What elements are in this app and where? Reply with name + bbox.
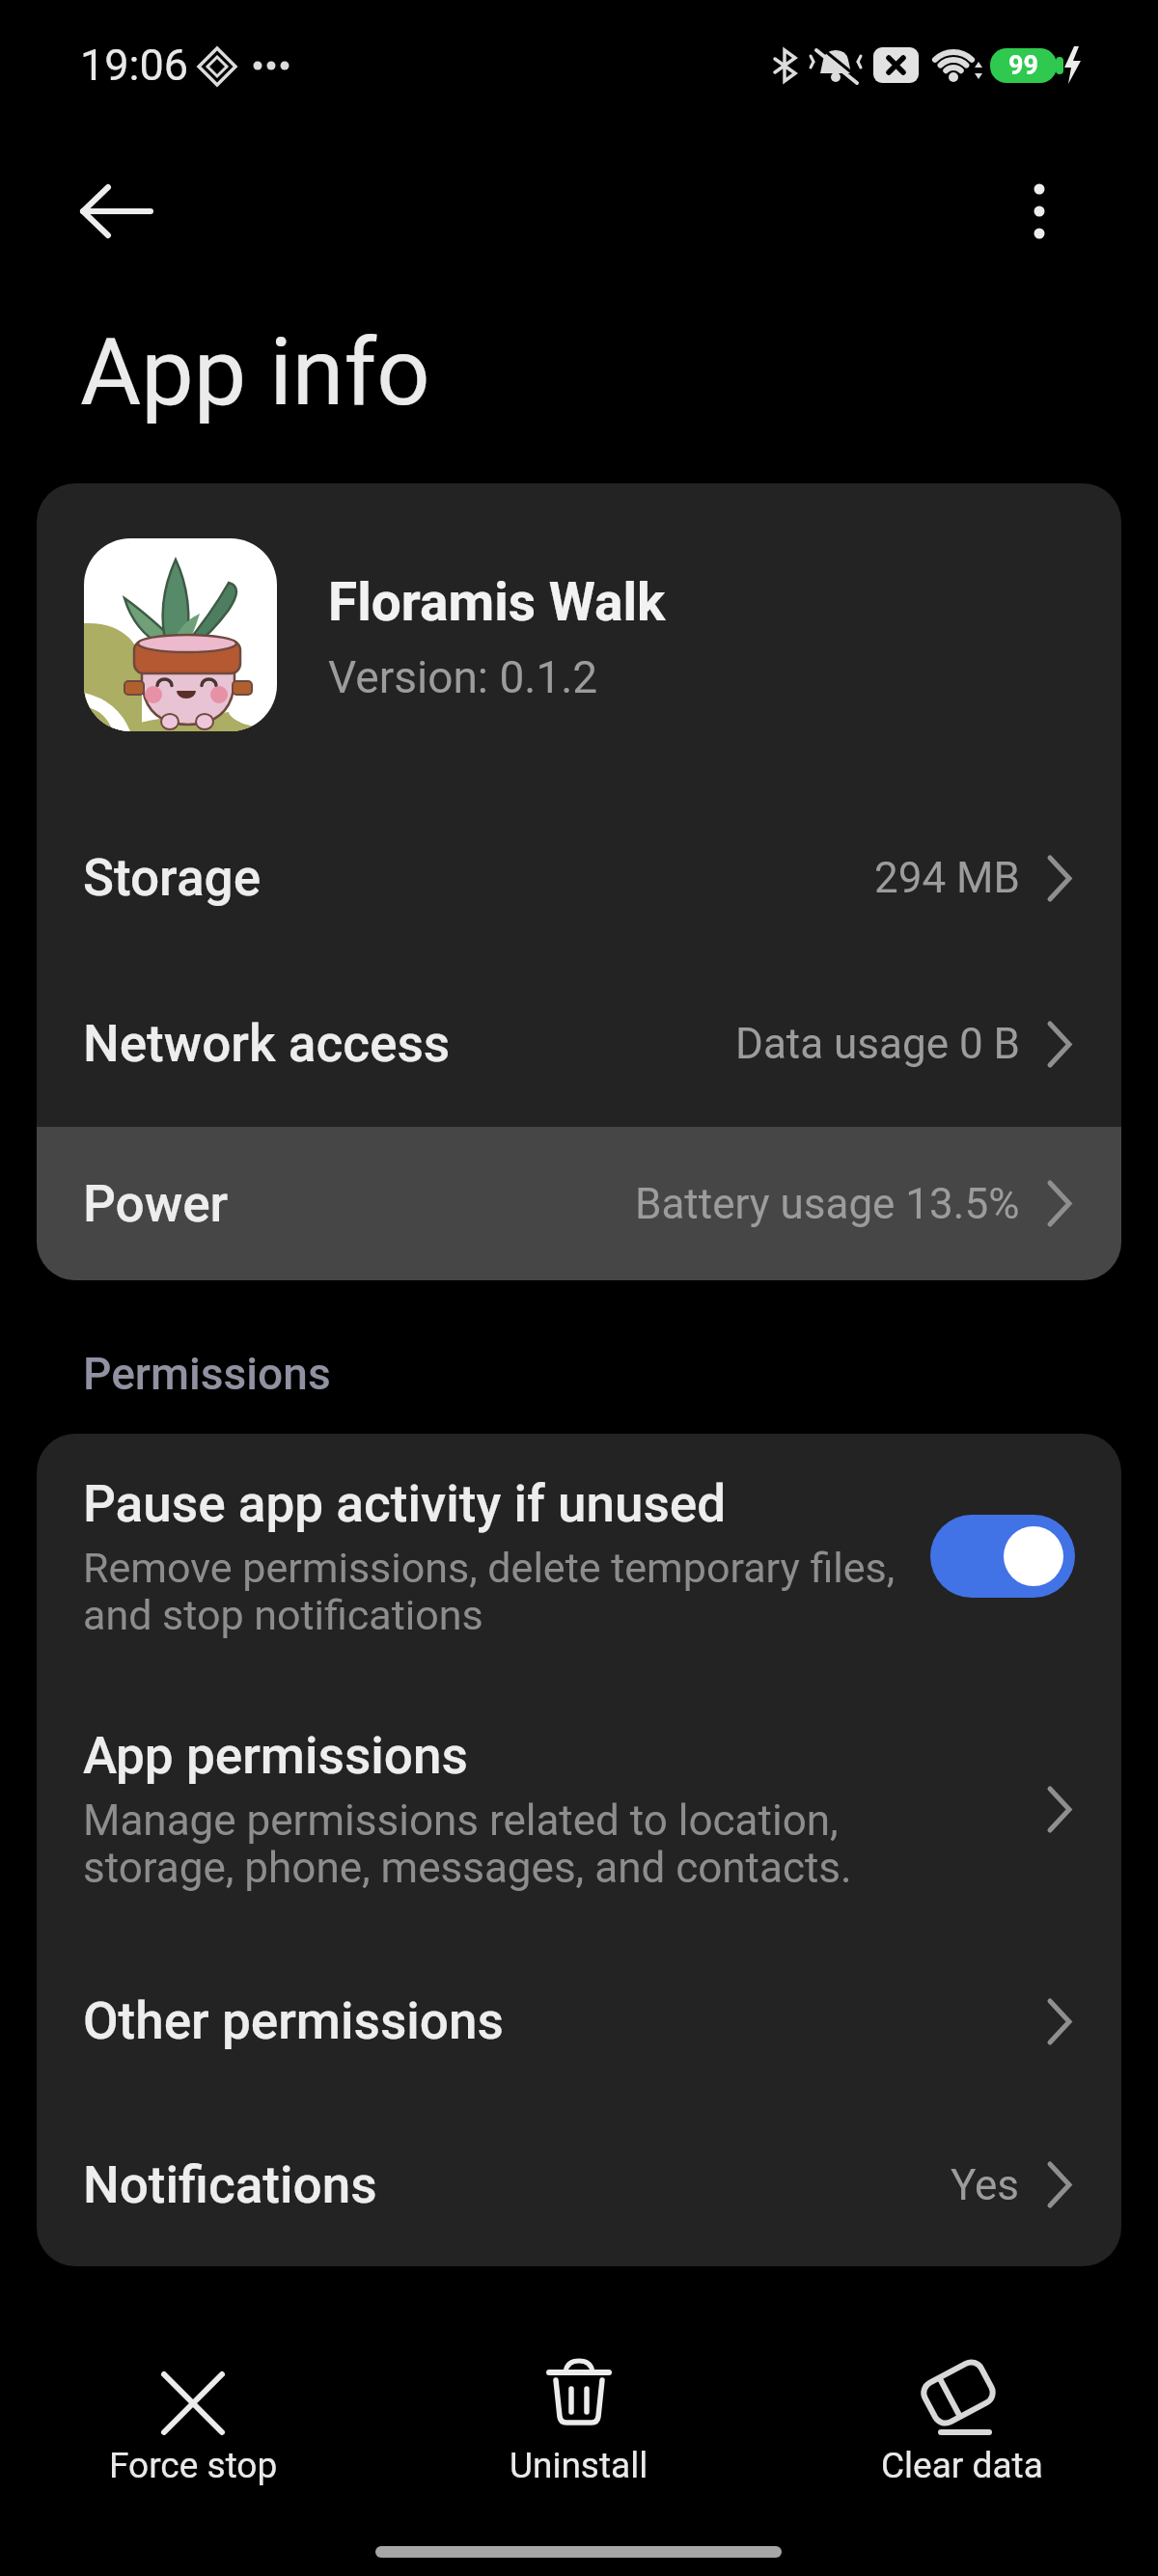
button[interactable]: Other permissions xyxy=(37,1939,1121,2103)
staticText: Data usage 0 B xyxy=(735,1019,1020,1069)
staticText: Force stop xyxy=(109,2445,278,2486)
button[interactable]: Uninstall xyxy=(463,2359,695,2486)
button[interactable]: Clear data xyxy=(846,2359,1078,2486)
staticText: Version: 0.1.2 xyxy=(328,651,598,703)
button[interactable]: Storage xyxy=(37,795,1121,961)
staticText: Notifications xyxy=(83,2155,377,2215)
button[interactable]: Power xyxy=(37,1127,1121,1280)
button[interactable]: App permissions xyxy=(37,1679,1121,1939)
staticText: Remove permissions, delete temporary fil… xyxy=(83,1544,896,1639)
staticText: Clear data xyxy=(881,2445,1043,2486)
staticText: App info xyxy=(80,317,430,427)
staticText: Yes xyxy=(951,2160,1020,2210)
staticText: Floramis Walk xyxy=(328,571,666,633)
button[interactable]: Pause app activity if unused xyxy=(37,1434,1121,1679)
staticText: Other permissions xyxy=(83,1991,504,2051)
staticText: Permissions xyxy=(83,1348,331,1400)
staticText: Network access xyxy=(83,1014,451,1074)
button[interactable] xyxy=(64,169,170,256)
staticText: Storage xyxy=(83,848,262,908)
staticText: 294 MB xyxy=(874,853,1020,903)
button[interactable] xyxy=(1010,170,1068,257)
staticText: Power xyxy=(83,1174,229,1234)
button[interactable]: Network access xyxy=(37,961,1121,1127)
button[interactable]: Force stop xyxy=(77,2359,309,2486)
staticText: Manage permissions related to location, … xyxy=(83,1795,852,1893)
staticText: 99 xyxy=(1008,50,1038,81)
button[interactable]: Notifications xyxy=(37,2103,1121,2266)
button[interactable] xyxy=(930,1515,1075,1598)
staticText: Battery usage 13.5% xyxy=(635,1179,1020,1229)
staticText: App permissions xyxy=(83,1726,468,1786)
staticText: 19:06 xyxy=(80,40,189,91)
staticText: Pause app activity if unused xyxy=(83,1474,727,1534)
staticText: Uninstall xyxy=(510,2445,648,2486)
